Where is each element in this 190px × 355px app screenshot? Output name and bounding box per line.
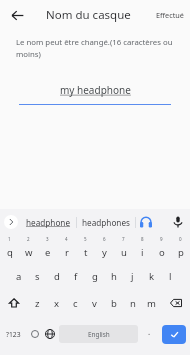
- button[interactable]: Effectué: [153, 5, 187, 25]
- staticText: l: [169, 270, 172, 283]
- staticText: Nom du casque: [46, 7, 131, 23]
- staticText: k: [149, 270, 155, 283]
- button[interactable]: More suggestions: [4, 215, 18, 229]
- staticText: r: [65, 246, 69, 259]
- button[interactable]: h: [104, 263, 123, 289]
- button[interactable]: 5: [76, 235, 95, 263]
- staticText: v: [92, 297, 97, 310]
- button[interactable]: k: [142, 263, 161, 289]
- staticText: s: [35, 270, 40, 283]
- staticText: 0: [179, 236, 182, 242]
- staticText: n: [130, 297, 136, 310]
- button[interactable]: English: [59, 325, 138, 343]
- staticText: b: [111, 297, 117, 310]
- staticText: Effectué: [156, 10, 184, 20]
- button[interactable]: a: [9, 263, 28, 289]
- button[interactable]: l: [161, 263, 180, 289]
- button[interactable]: 0: [171, 235, 190, 263]
- button[interactable]: 6: [95, 235, 114, 263]
- staticText: t: [84, 246, 88, 259]
- button[interactable]: m: [142, 289, 161, 317]
- staticText: o: [159, 246, 165, 259]
- button[interactable]: 4: [57, 235, 76, 263]
- button[interactable]: f: [66, 263, 85, 289]
- button[interactable]: 7: [114, 235, 133, 263]
- staticText: q: [7, 246, 13, 259]
- button[interactable]: Shift: [0, 289, 28, 317]
- staticText: g: [92, 270, 98, 283]
- button[interactable]: Enter: [162, 325, 186, 344]
- button[interactable]: b: [104, 289, 123, 317]
- staticText: u: [121, 246, 127, 259]
- button[interactable]: j: [123, 263, 142, 289]
- button[interactable]: headphone: [23, 212, 74, 233]
- button[interactable]: Headphones: [136, 212, 156, 232]
- staticText: p: [178, 246, 184, 259]
- staticText: e: [45, 246, 51, 259]
- button[interactable]: s: [28, 263, 47, 289]
- staticText: 2: [27, 236, 30, 242]
- staticText: ?123: [6, 330, 21, 339]
- staticText: j: [131, 270, 134, 283]
- button[interactable]: my headphone: [19, 83, 171, 97]
- button[interactable]: ?123: [0, 322, 27, 346]
- staticText: h: [111, 270, 117, 283]
- staticText: 9: [160, 236, 163, 242]
- staticText: 8: [141, 236, 144, 242]
- button[interactable]: headphones: [79, 212, 133, 233]
- staticText: y: [102, 246, 107, 259]
- button[interactable]: z: [28, 289, 47, 317]
- button[interactable]: d: [47, 263, 66, 289]
- staticText: 5: [84, 236, 87, 242]
- button[interactable]: 8: [133, 235, 152, 263]
- button[interactable]: 3: [38, 235, 57, 263]
- button[interactable]: Emoji: [27, 322, 42, 346]
- button[interactable]: .: [140, 322, 158, 346]
- staticText: z: [35, 297, 40, 310]
- button[interactable]: n: [123, 289, 142, 317]
- staticText: 1: [8, 236, 11, 242]
- button[interactable]: Change language: [42, 322, 57, 346]
- staticText: 4: [65, 236, 68, 242]
- button[interactable]: 2: [19, 235, 38, 263]
- staticText: headphones: [82, 217, 130, 228]
- staticText: a: [16, 270, 22, 283]
- staticText: w: [25, 246, 33, 259]
- staticText: d: [54, 270, 60, 283]
- button[interactable]: 9: [152, 235, 171, 263]
- staticText: 7: [122, 236, 125, 242]
- button[interactable]: c: [66, 289, 85, 317]
- button[interactable]: g: [85, 263, 104, 289]
- button[interactable]: Backspace: [161, 289, 190, 317]
- staticText: Le nom peut être changé.(16 caractères o…: [16, 37, 178, 59]
- staticText: my headphone: [60, 83, 131, 97]
- staticText: .: [148, 326, 151, 337]
- staticText: c: [73, 297, 78, 310]
- button[interactable]: x: [47, 289, 66, 317]
- button[interactable]: v: [85, 289, 104, 317]
- staticText: 6: [103, 236, 106, 242]
- button[interactable]: Back: [5, 3, 29, 27]
- staticText: i: [141, 246, 144, 259]
- staticText: headphone: [26, 217, 71, 228]
- button[interactable]: 1: [0, 235, 19, 263]
- button[interactable]: Voice input: [168, 212, 188, 232]
- staticText: 3: [46, 236, 49, 242]
- staticText: f: [74, 270, 78, 283]
- staticText: x: [54, 297, 60, 310]
- staticText: English: [88, 330, 110, 339]
- staticText: m: [147, 297, 156, 310]
